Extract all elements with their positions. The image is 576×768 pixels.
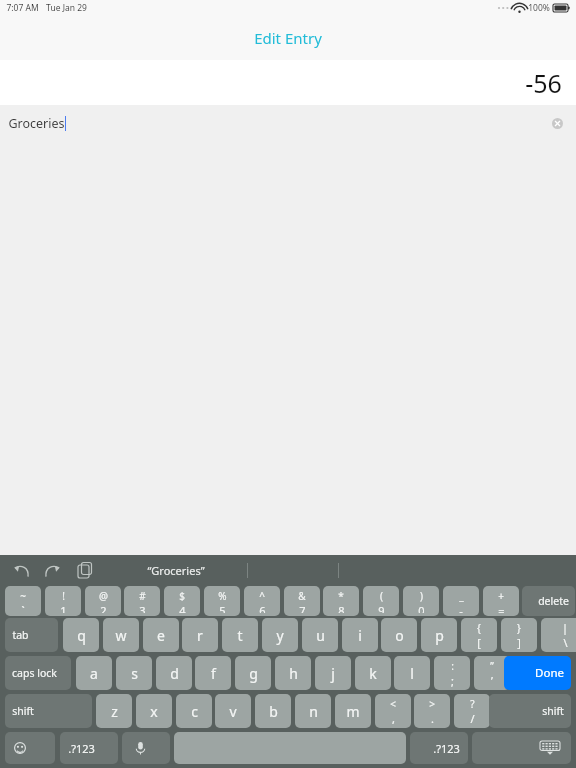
- button[interactable]: (: [363, 586, 399, 616]
- button[interactable]: r: [182, 618, 218, 652]
- button[interactable]: caps lock: [5, 656, 71, 690]
- staticText: y: [276, 626, 284, 645]
- button[interactable]: {: [461, 618, 497, 652]
- button[interactable]: j: [315, 656, 351, 690]
- staticText: x: [150, 702, 158, 721]
- button[interactable]: a: [76, 656, 112, 690]
- button[interactable]: d: [156, 656, 192, 690]
- staticText: +: [498, 589, 504, 603]
- staticText: !: [62, 589, 65, 603]
- button[interactable]: Groceries: [0, 105, 576, 141]
- button[interactable]: e: [143, 618, 179, 652]
- staticText: 1: [60, 603, 67, 613]
- button[interactable]: m: [335, 694, 371, 728]
- button[interactable]: |: [541, 618, 576, 652]
- staticText: c: [191, 702, 198, 721]
- button[interactable]: $: [164, 586, 200, 616]
- button[interactable]: i: [342, 618, 378, 652]
- staticText: [: [477, 635, 481, 649]
- button[interactable]: Hide keyboard: [472, 732, 571, 764]
- button[interactable]: w: [103, 618, 139, 652]
- staticText: `: [21, 603, 25, 613]
- staticText: &: [298, 589, 306, 603]
- button[interactable]: !: [45, 586, 81, 616]
- staticText: 8: [338, 603, 345, 613]
- button[interactable]: @: [85, 586, 121, 616]
- staticText: |: [562, 621, 568, 635]
- button[interactable]: Emoji: [5, 732, 55, 764]
- button[interactable]: ~: [5, 586, 41, 616]
- button[interactable]: t: [222, 618, 258, 652]
- button[interactable]: shift: [5, 694, 92, 728]
- button[interactable]: Dictation: [122, 732, 170, 764]
- staticText: \: [563, 635, 568, 649]
- button[interactable]: q: [63, 618, 99, 652]
- button[interactable]: x: [136, 694, 172, 728]
- button[interactable]: .?123: [60, 732, 118, 764]
- staticText: (: [380, 589, 383, 603]
- staticText: caps lock: [12, 666, 57, 680]
- button[interactable]: n: [295, 694, 331, 728]
- button[interactable]: l: [394, 656, 430, 690]
- button[interactable]: shift: [489, 694, 571, 728]
- button[interactable]: Undo: [10, 561, 32, 581]
- button[interactable]: #: [124, 586, 160, 616]
- button[interactable]: h: [275, 656, 311, 690]
- button[interactable]: p: [421, 618, 457, 652]
- button[interactable]: ?: [454, 694, 490, 728]
- staticText: a: [90, 664, 98, 683]
- button[interactable]: .?123: [410, 732, 468, 764]
- staticText: :: [451, 659, 454, 673]
- button[interactable]: Space: [174, 732, 406, 764]
- button[interactable]: delete: [522, 586, 575, 616]
- button[interactable]: y: [262, 618, 298, 652]
- button[interactable]: ^: [244, 586, 280, 616]
- button[interactable]: &: [284, 586, 320, 616]
- staticText: %: [218, 589, 227, 603]
- staticText: shift: [12, 704, 34, 718]
- button[interactable]: <: [375, 694, 411, 728]
- button[interactable]: f: [195, 656, 231, 690]
- staticText: ”: [490, 659, 494, 673]
- button[interactable]: %: [204, 586, 240, 616]
- button[interactable]: ): [403, 586, 439, 616]
- staticText: g: [249, 664, 258, 683]
- button[interactable]: b: [255, 694, 291, 728]
- button[interactable]: z: [96, 694, 132, 728]
- staticText: i: [358, 626, 362, 645]
- staticText: 6: [259, 603, 266, 613]
- button[interactable]: o: [381, 618, 417, 652]
- staticText: v: [229, 702, 237, 721]
- button[interactable]: ”: [474, 656, 510, 690]
- button[interactable]: *: [323, 586, 359, 616]
- staticText: ?: [470, 697, 475, 711]
- button[interactable]: _: [443, 586, 479, 616]
- button[interactable]: Done: [504, 656, 571, 690]
- staticText: h: [289, 664, 298, 683]
- staticText: ): [420, 589, 423, 603]
- button[interactable]: s: [116, 656, 152, 690]
- button[interactable]: k: [355, 656, 391, 690]
- button[interactable]: }: [501, 618, 537, 652]
- button[interactable]: Paste: [74, 561, 94, 581]
- button[interactable]: “Groceries”: [105, 555, 247, 586]
- button[interactable]: >: [414, 694, 450, 728]
- button[interactable]: :: [434, 656, 470, 690]
- staticText: 7: [299, 603, 306, 613]
- staticText: @: [99, 589, 108, 603]
- button[interactable]: Clear text: [549, 115, 565, 131]
- staticText: 100%: [528, 2, 550, 14]
- staticText: 2: [100, 603, 107, 613]
- button[interactable]: c: [176, 694, 212, 728]
- button[interactable]: tab: [5, 618, 58, 652]
- button[interactable]: u: [302, 618, 338, 652]
- button[interactable]: v: [215, 694, 251, 728]
- staticText: Edit Entry: [254, 28, 322, 48]
- button[interactable]: +: [483, 586, 519, 616]
- staticText: 4: [179, 603, 186, 613]
- button[interactable]: g: [235, 656, 271, 690]
- staticText: l: [410, 664, 414, 683]
- staticText: delete: [538, 594, 569, 608]
- button[interactable]: Redo: [42, 561, 64, 581]
